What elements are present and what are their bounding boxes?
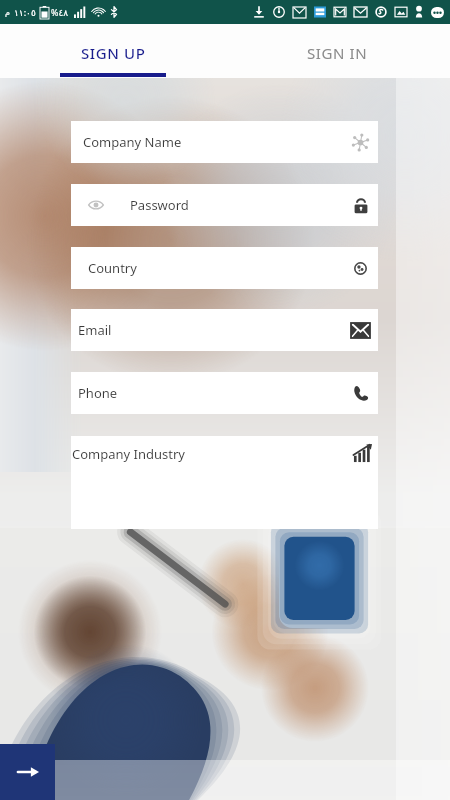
staticText: Company Industry — [72, 445, 185, 463]
other: Password field — [353, 198, 369, 214]
staticText: Country — [88, 259, 137, 277]
other: Email — [351, 323, 370, 338]
staticText: م — [5, 8, 10, 17]
other: Company network — [351, 133, 370, 152]
staticText: SIGN UP — [81, 43, 146, 63]
button[interactable]: SIGN IN — [225, 24, 450, 78]
other: Show password — [88, 197, 104, 213]
button[interactable]: Country — [71, 247, 378, 289]
button[interactable]: Next — [0, 744, 55, 800]
staticText: Email — [78, 321, 112, 339]
staticText: Company Name — [83, 133, 182, 151]
button[interactable]: Company Name — [71, 121, 378, 163]
button[interactable]: Show password — [71, 184, 378, 226]
other: Country — [354, 262, 367, 275]
staticText: Password — [130, 196, 189, 214]
staticText: Phone — [78, 384, 118, 402]
button[interactable]: Company Industry — [71, 436, 378, 529]
button[interactable]: SIGN UP — [0, 24, 225, 78]
button[interactable]: Phone — [71, 372, 378, 414]
staticText: %٤٨ — [51, 6, 69, 18]
staticText: SIGN IN — [307, 43, 368, 63]
other: Phone — [352, 385, 369, 402]
button[interactable]: Email — [71, 309, 378, 351]
staticText: ١١:٠٥ — [14, 6, 36, 18]
other: Company industry — [353, 444, 372, 463]
